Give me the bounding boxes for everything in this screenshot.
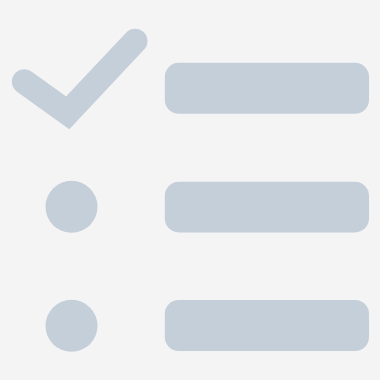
button[interactable]: Task three xyxy=(0,278,380,372)
button[interactable]: Completed task xyxy=(0,20,380,140)
button[interactable]: Task two xyxy=(0,160,380,255)
